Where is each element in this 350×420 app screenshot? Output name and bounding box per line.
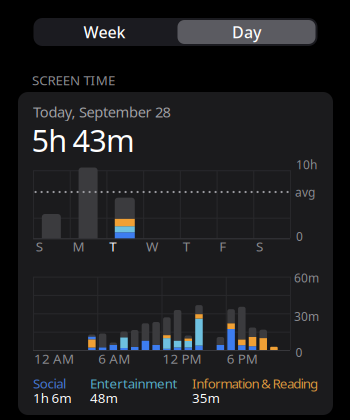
staticText: 6 PM [227,350,258,367]
button[interactable]: Week [33,18,175,46]
staticText: 10h [296,156,317,172]
staticText: SCREEN TIME [32,71,115,89]
staticText: Entertainment [90,374,178,392]
staticText: Social [33,374,66,392]
staticText: 30m [294,308,319,324]
staticText: 1h 6m [33,389,71,407]
staticText: Day [232,21,261,43]
staticText: 35m [192,389,220,407]
staticText: 6 AM [98,350,130,367]
staticText: 0 [295,344,302,360]
staticText: Information & Reading [192,374,318,392]
staticText: T [109,237,116,255]
staticText: 60m [294,270,319,286]
staticText: S [256,237,263,255]
staticText: S [36,237,43,255]
staticText: W [146,237,158,255]
staticText: Today, September 28 [33,102,171,122]
staticText: Week [83,21,125,43]
staticText: avg [295,184,315,200]
staticText: 12 PM [162,350,201,367]
staticText: M [72,237,84,255]
staticText: 12 AM [34,350,74,367]
staticText: 0 [296,228,303,244]
staticText: T [183,237,190,255]
staticText: 48m [90,389,118,407]
staticText: F [219,237,226,255]
staticText: 5h 43m [31,120,135,160]
button[interactable]: Day [177,20,315,44]
